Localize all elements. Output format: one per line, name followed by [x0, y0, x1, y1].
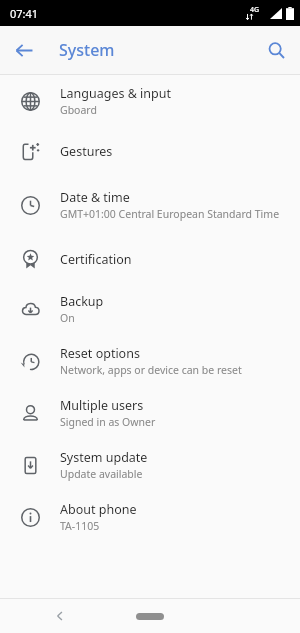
staticText: Signed in as Owner: [60, 415, 156, 429]
staticText: System: [59, 39, 115, 61]
staticText: System update: [60, 449, 148, 466]
button[interactable]: Home: [128, 605, 172, 627]
button[interactable]: Search: [258, 32, 294, 68]
button[interactable]: Certification: [0, 235, 300, 283]
staticText: 07:41: [10, 6, 39, 21]
button[interactable]: Reset options: [0, 335, 300, 387]
button[interactable]: Gestures: [0, 127, 300, 175]
button[interactable]: System update: [0, 439, 300, 491]
staticText: Network, apps or device can be reset: [60, 363, 242, 377]
staticText: TA-1105: [60, 519, 100, 533]
staticText: Update available: [60, 467, 143, 481]
staticText: Gestures: [60, 143, 113, 160]
button[interactable]: Date & time: [0, 175, 300, 235]
staticText: GMT+01:00 Central European Standard Time: [60, 207, 280, 221]
staticText: About phone: [60, 501, 137, 518]
staticText: Reset options: [60, 345, 140, 362]
button[interactable]: About phone: [0, 491, 300, 543]
staticText: Date & time: [60, 189, 130, 206]
button[interactable]: Multiple users: [0, 387, 300, 439]
staticText: On: [60, 311, 75, 325]
button[interactable]: Languages & input: [0, 75, 300, 127]
staticText: Backup: [60, 293, 104, 310]
staticText: Certification: [60, 251, 132, 268]
button[interactable]: Back: [46, 602, 74, 630]
staticText: Multiple users: [60, 397, 144, 414]
button[interactable]: Back: [6, 32, 42, 68]
button[interactable]: Backup: [0, 283, 300, 335]
staticText: Languages & input: [60, 85, 171, 102]
staticText: Gboard: [60, 103, 97, 117]
staticText: 4G: [250, 5, 260, 15]
